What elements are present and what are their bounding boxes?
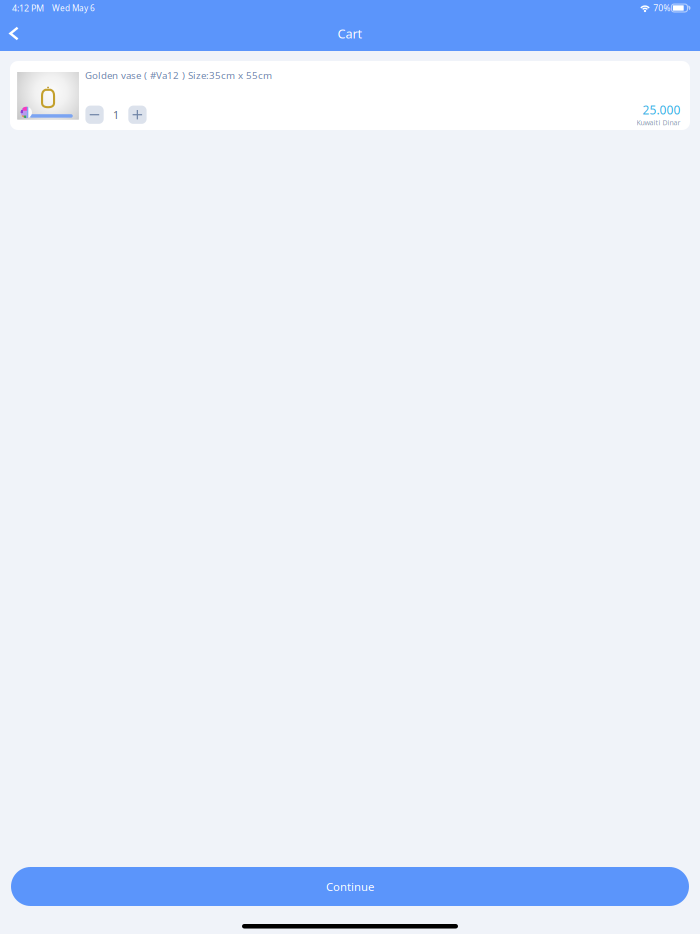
staticText: 4:12 PM bbox=[12, 2, 44, 14]
staticText: Golden vase ( #Va12 ) Size:35cm x 55cm bbox=[85, 69, 272, 82]
staticText: Continue bbox=[326, 879, 374, 894]
staticText: 25.000 bbox=[642, 102, 680, 118]
button[interactable]: Decrease quantity bbox=[85, 106, 104, 124]
staticText: Wed May 6 bbox=[52, 2, 95, 14]
staticText: 1 bbox=[113, 107, 119, 122]
button[interactable]: Back bbox=[0, 16, 33, 50]
staticText: Kuwaiti Dinar bbox=[636, 118, 680, 127]
button[interactable]: Increase quantity bbox=[128, 106, 147, 124]
staticText: Cart bbox=[337, 25, 362, 42]
button[interactable]: Continue bbox=[11, 867, 689, 906]
staticText: 70% bbox=[653, 2, 670, 14]
